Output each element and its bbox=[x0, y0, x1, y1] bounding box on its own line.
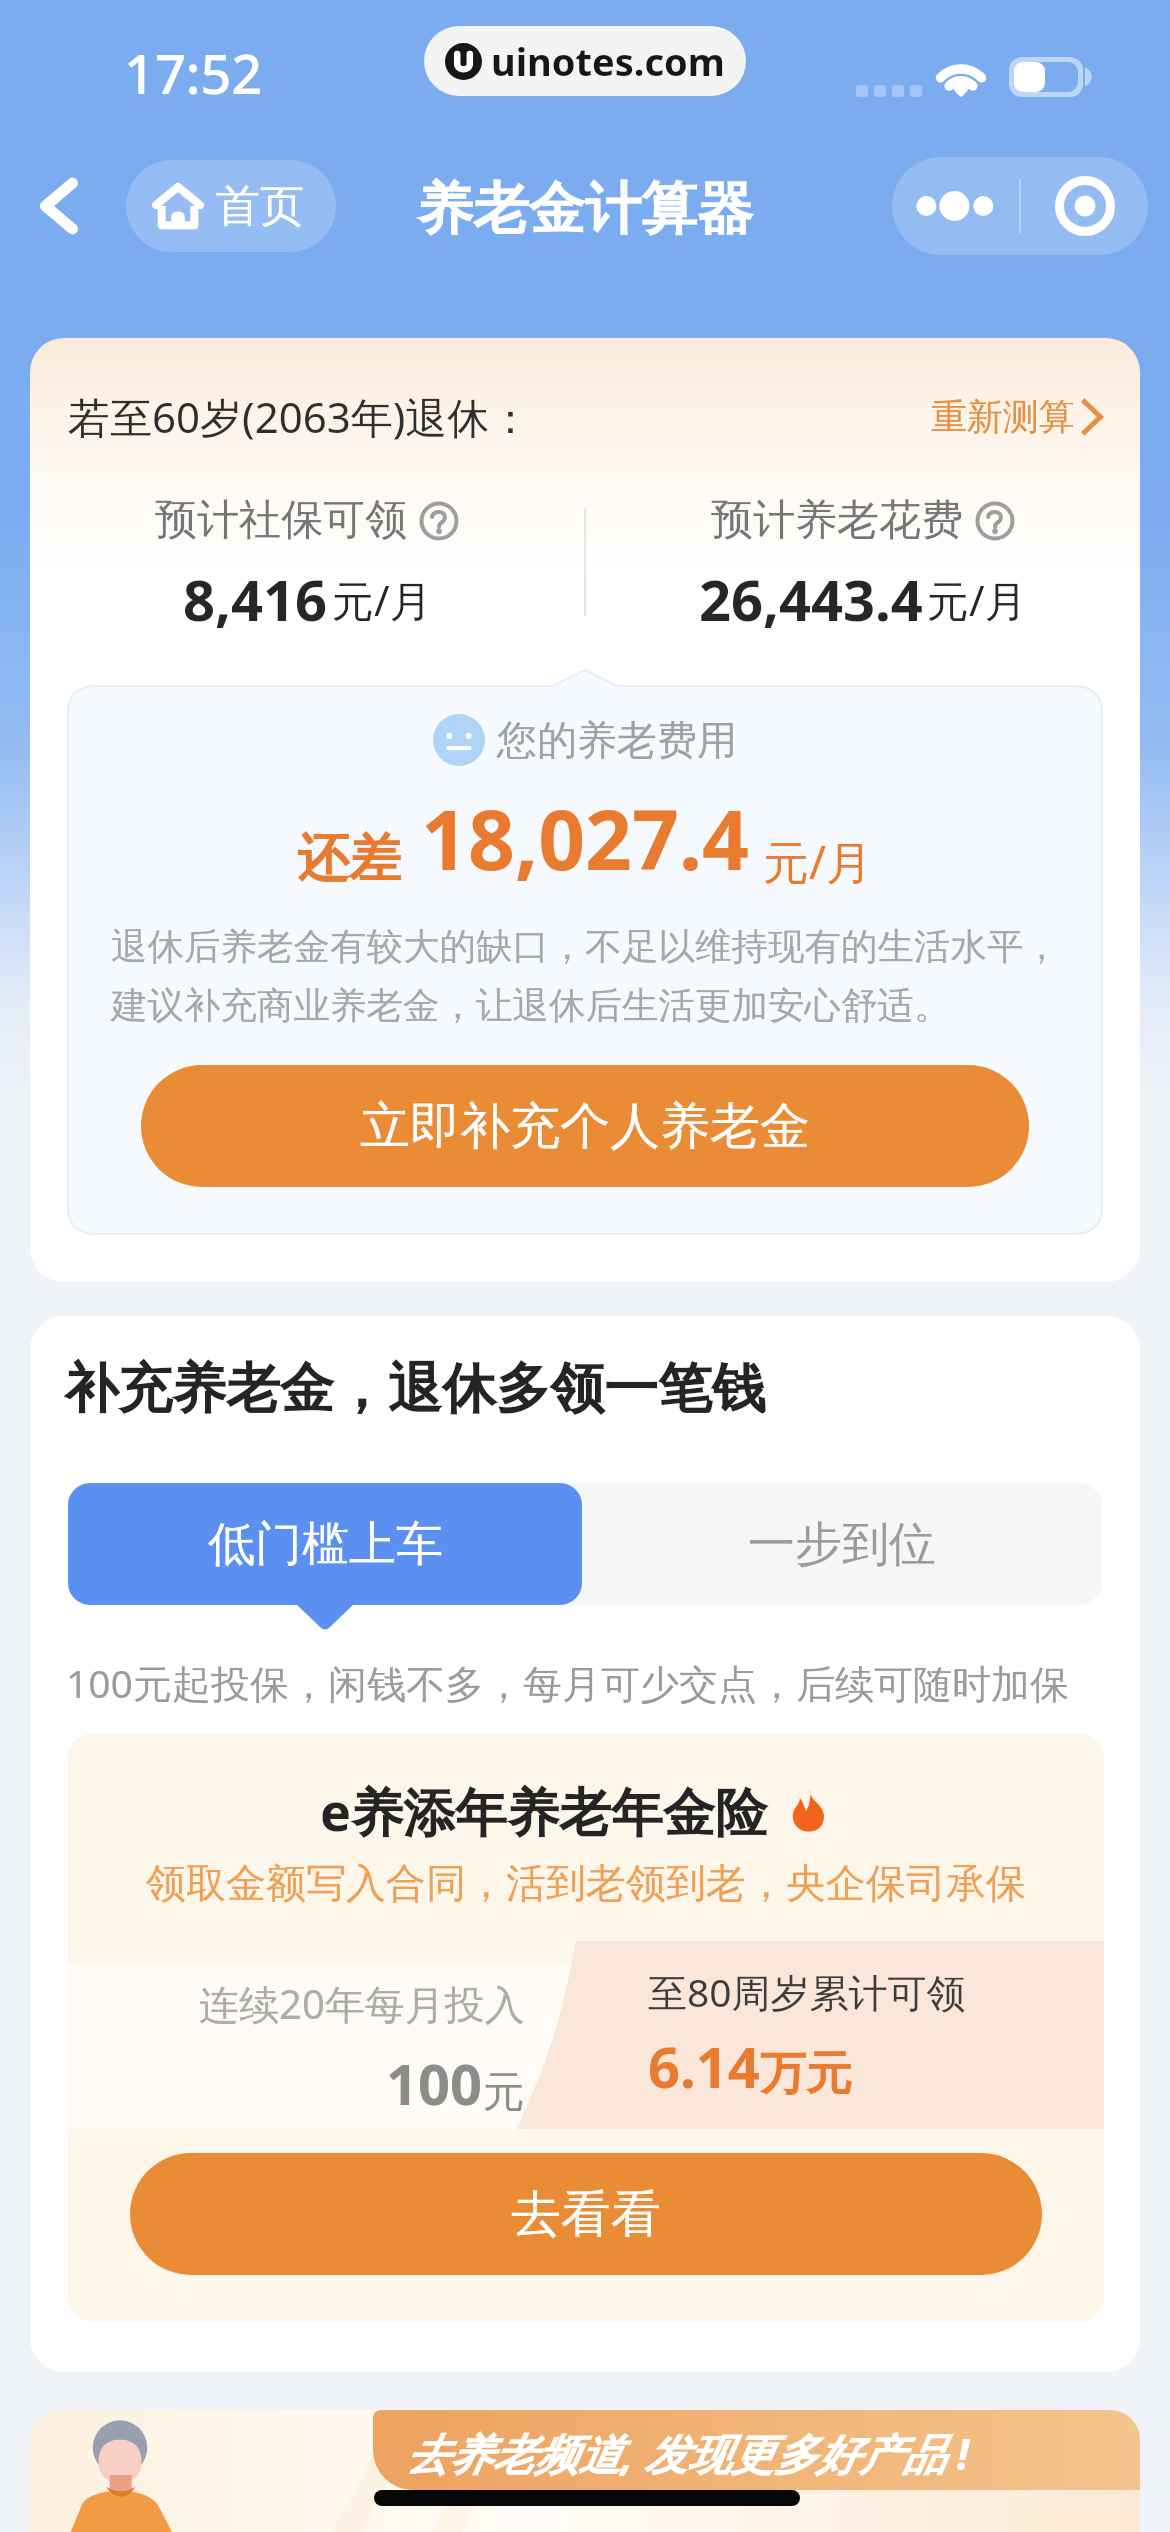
staticText: 立即补充个人养老金 bbox=[360, 1095, 810, 1158]
button[interactable]: Close bbox=[1021, 157, 1148, 255]
staticText: 17:52 bbox=[124, 36, 263, 110]
staticText: 领取金额写入合同，活到老领到老，央企保司承保 bbox=[146, 1858, 1026, 1908]
staticText: e养添年养老年金险 bbox=[320, 1775, 768, 1846]
button[interactable]: 首页 bbox=[126, 160, 336, 252]
staticText: 元 bbox=[483, 2066, 525, 2119]
staticText: 预计养老花费 bbox=[711, 494, 963, 547]
staticText: 去看看 bbox=[511, 2183, 661, 2246]
staticText: 8,416 bbox=[183, 561, 328, 630]
staticText: 首页 bbox=[216, 179, 304, 234]
staticText: 退休后养老金有较大的缺口，不足以维持现有的生活水平， bbox=[111, 924, 1060, 970]
staticText: 100 bbox=[386, 2045, 483, 2121]
staticText: 低门槛上车 bbox=[208, 1515, 443, 1574]
staticText: 一步到位 bbox=[748, 1515, 936, 1574]
button[interactable]: 去养老频道, 发现更多好产品 ! bbox=[30, 2410, 1140, 2532]
staticText: 26,443.4 bbox=[699, 561, 923, 630]
staticText: 元/月 bbox=[927, 571, 1027, 628]
staticText: 至80周岁累计可领 bbox=[648, 1965, 966, 2018]
staticText: 18,027.4 bbox=[421, 782, 749, 894]
staticText: 万元 bbox=[760, 2045, 852, 2103]
button[interactable]: More options bbox=[892, 157, 1019, 255]
staticText: 建议补充商业养老金，让退休后生活更加安心舒适。 bbox=[111, 983, 951, 1029]
button[interactable]: 立即补充个人养老金 bbox=[141, 1065, 1029, 1187]
staticText: uinotes.com bbox=[491, 35, 725, 87]
staticText: 还差 bbox=[297, 826, 401, 892]
staticText: 重新测算 bbox=[931, 394, 1075, 439]
button[interactable]: 低门槛上车 bbox=[68, 1483, 582, 1605]
staticText: 元/月 bbox=[332, 571, 432, 628]
staticText: 补充养老金，退休多领一笔钱 bbox=[64, 1355, 766, 1423]
staticText: 若至60岁(2063年)退休： bbox=[68, 388, 532, 445]
staticText: 您的养老费用 bbox=[497, 715, 737, 765]
button[interactable]: 一步到位 bbox=[582, 1483, 1102, 1605]
button[interactable]: Back bbox=[14, 160, 106, 252]
staticText: 6.14 bbox=[648, 2028, 760, 2104]
staticText: 连续20年每月投入 bbox=[199, 1976, 525, 2031]
staticText: 元/月 bbox=[763, 830, 873, 893]
staticText: 预计社保可领 bbox=[155, 494, 407, 547]
staticText: 100元起投保，闲钱不多，每月可少交点，后续可随时加保 bbox=[66, 1656, 1069, 1709]
staticText: 去养老频道, 发现更多好产品 ! bbox=[406, 2424, 1006, 2483]
button[interactable]: 去看看 bbox=[130, 2153, 1042, 2275]
staticText: 养老金计算器 bbox=[417, 174, 753, 245]
button[interactable]: 重新测算 bbox=[931, 394, 1102, 439]
